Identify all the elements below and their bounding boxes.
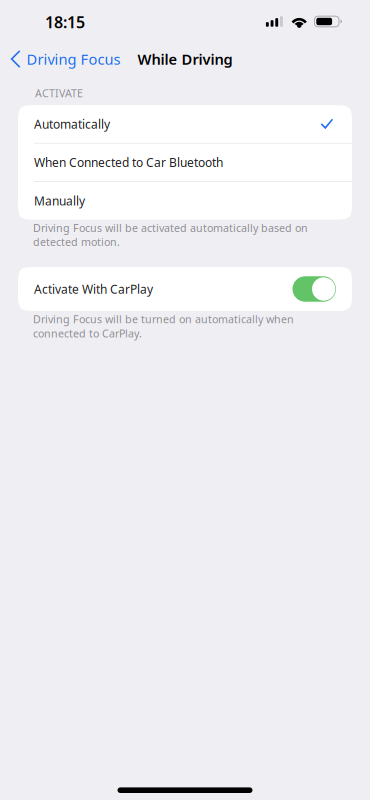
staticText: Driving Focus will be turned on automati… [33, 312, 294, 340]
button[interactable]: Automatically [18, 105, 352, 143]
staticText: When Connected to Car Bluetooth [34, 154, 223, 170]
staticText: Driving Focus [26, 49, 120, 69]
button[interactable]: Activate With CarPlay [18, 267, 352, 311]
staticText: Automatically [34, 116, 110, 132]
staticText: ACTIVATE [35, 86, 83, 100]
staticText: 18:15 [45, 11, 85, 33]
button[interactable]: Driving Focus [0, 43, 130, 75]
button[interactable]: Manually [18, 182, 352, 220]
staticText: Activate With CarPlay [34, 281, 153, 297]
staticText: Driving Focus will be activated automati… [33, 221, 308, 249]
button[interactable]: When Connected to Car Bluetooth [18, 144, 352, 181]
staticText: Manually [34, 193, 85, 209]
staticText: While Driving [137, 49, 232, 69]
